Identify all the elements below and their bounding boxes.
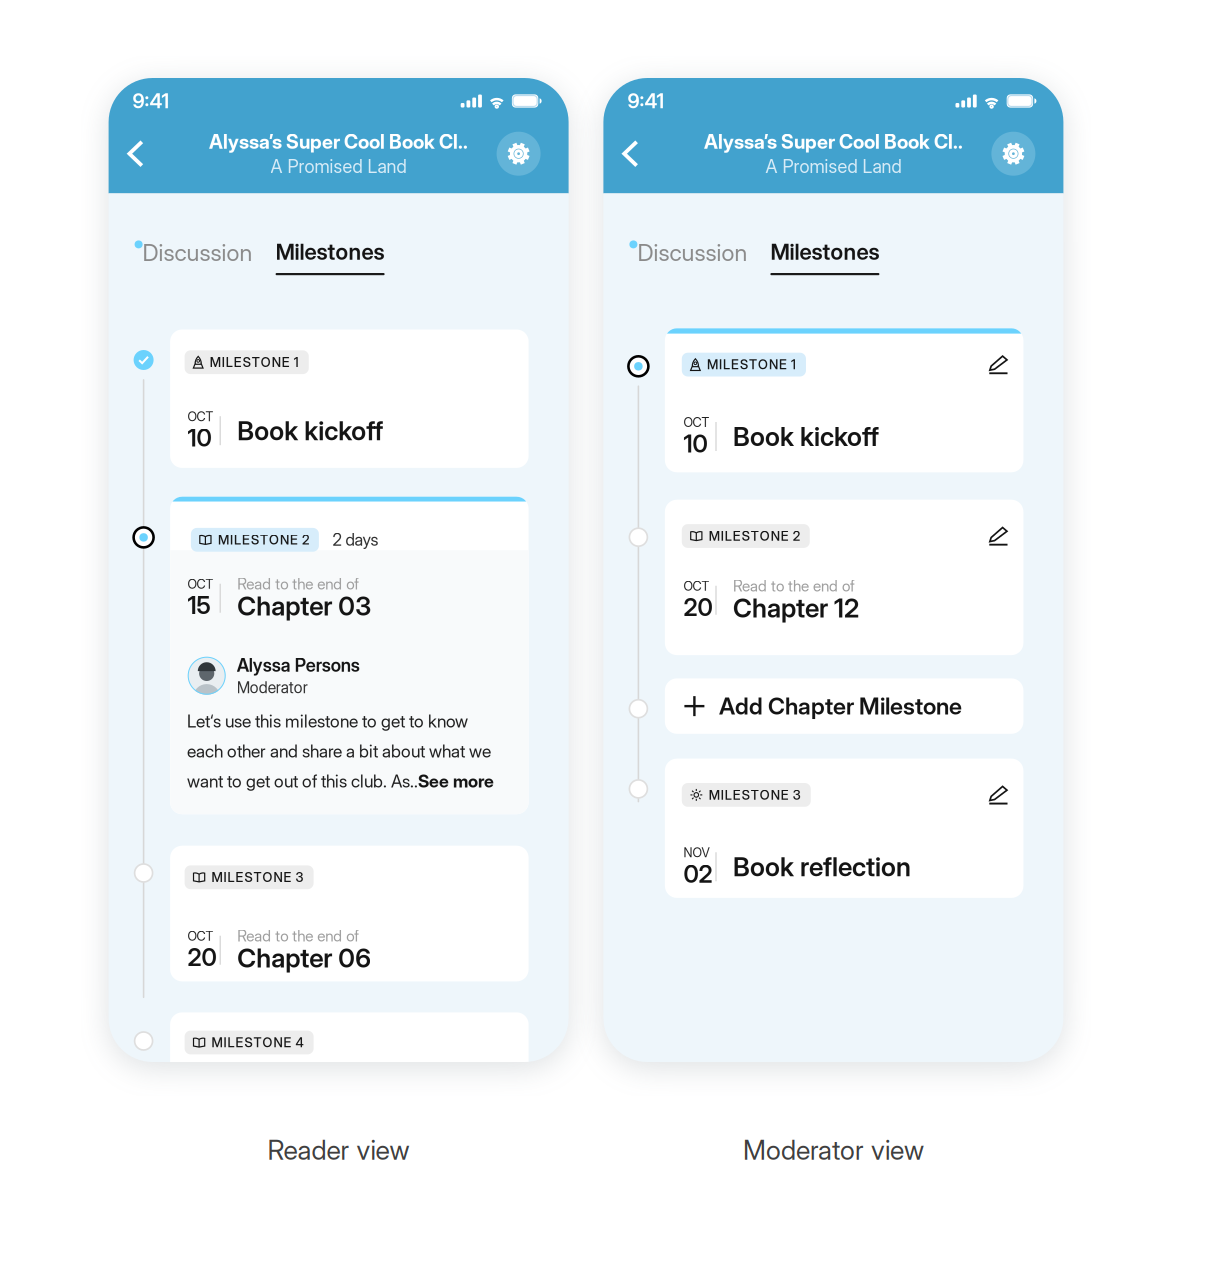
- staticText: Moderator: [237, 678, 308, 697]
- staticText: Chapter 12: [733, 592, 859, 624]
- staticText: OCT: [683, 415, 709, 430]
- button[interactable]: Settings: [991, 132, 1035, 176]
- staticText: M I L E S T O N E 1: [707, 357, 796, 372]
- button[interactable]: Edit milestone 3: [989, 786, 1008, 805]
- button[interactable]: Edit milestone 1: [989, 355, 1008, 375]
- staticText: M I L E S T O N E 2: [218, 532, 309, 548]
- staticText: Book reflection: [733, 851, 911, 883]
- staticText: Chapter 03: [237, 590, 371, 622]
- staticText: M I L E S T O N E 3: [212, 869, 304, 885]
- staticText: 20: [188, 943, 217, 972]
- staticText: Read to the end of: [733, 577, 855, 595]
- button[interactable]: Discussion: [135, 238, 253, 283]
- staticText: Moderator view: [743, 1134, 924, 1166]
- staticText: 9:41: [627, 89, 664, 113]
- button[interactable]: Add Chapter Milestone: [665, 678, 1023, 734]
- staticText: M I L E S T O N E 1: [210, 354, 299, 370]
- staticText: NOV: [683, 845, 709, 860]
- staticText: 02: [683, 859, 712, 888]
- staticText: Reader view: [268, 1134, 410, 1166]
- button[interactable]: Milestones: [276, 238, 385, 275]
- staticText: Read to the end of: [237, 575, 359, 593]
- staticText: OCT: [188, 928, 214, 944]
- staticText: want to get out of this club. As..: [187, 771, 418, 792]
- staticText: M I L E S T O N E 2: [709, 528, 800, 544]
- staticText: each other and share a bit about what we: [187, 741, 491, 762]
- staticText: OCT: [683, 578, 709, 594]
- staticText: Book kickoff: [237, 415, 383, 446]
- button[interactable]: Milestones: [770, 238, 879, 275]
- staticText: 9:41: [133, 89, 170, 113]
- staticText: See more: [418, 771, 494, 792]
- staticText: M I L E S T O N E 4: [212, 1035, 304, 1050]
- staticText: OCT: [188, 576, 214, 592]
- button[interactable]: Settings: [497, 132, 541, 176]
- button[interactable]: Edit milestone 2: [989, 527, 1008, 546]
- staticText: 2 days: [332, 530, 378, 550]
- button[interactable]: Back: [603, 124, 657, 184]
- staticText: Add Chapter Milestone: [719, 692, 962, 720]
- staticText: Let‘s use this milestone to get to know: [187, 711, 468, 732]
- button[interactable]: Discussion: [629, 238, 747, 283]
- staticText: Alyssa’s Super Cool Book Cl..: [704, 130, 963, 154]
- staticText: A Promised Land: [271, 155, 407, 177]
- staticText: 10: [683, 429, 707, 458]
- staticText: Discussion: [637, 238, 747, 267]
- staticText: Read to the end of: [237, 927, 359, 945]
- staticText: 20: [683, 593, 712, 622]
- staticText: Alyssa’s Super Cool Book Cl..: [209, 130, 468, 154]
- staticText: Alyssa Persons: [237, 654, 360, 676]
- staticText: Chapter 06: [237, 942, 371, 974]
- staticText: Discussion: [143, 238, 253, 267]
- staticText: 15: [188, 591, 211, 620]
- staticText: 10: [188, 423, 212, 452]
- staticText: Milestones: [276, 238, 385, 265]
- staticText: A Promised Land: [765, 155, 901, 177]
- staticText: M I L E S T O N E 3: [709, 787, 801, 803]
- button[interactable]: Back: [109, 124, 163, 184]
- staticText: OCT: [188, 409, 214, 424]
- staticText: Book kickoff: [733, 421, 879, 452]
- staticText: Milestones: [770, 238, 879, 265]
